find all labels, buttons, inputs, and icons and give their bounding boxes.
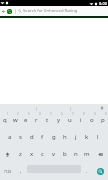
button[interactable]: d [26,129,37,146]
staticText: f [41,133,44,141]
button[interactable]: Site icon [6,6,12,16]
staticText: q [3,116,7,124]
staticText: 3 [28,112,30,116]
staticText: z [19,150,22,158]
button[interactable]: k [81,129,92,146]
staticText: k [85,133,89,141]
staticText: Search for Enhanced Rating [23,8,78,14]
staticText: n [74,150,78,158]
button[interactable]: 0 [97,112,108,129]
button[interactable]: . [82,163,92,180]
button[interactable] [36,104,70,112]
staticText: 8 [83,112,85,116]
staticText: , [20,168,22,175]
button[interactable]: f [37,129,48,146]
staticText: 0 [105,112,107,116]
button[interactable]: Search [92,163,108,180]
button[interactable]: b [59,146,70,163]
button[interactable]: 7 [64,112,75,129]
staticText: 6 [61,112,63,116]
button[interactable]: s [15,129,26,146]
button[interactable]: g [48,129,59,146]
button[interactable]: v [48,146,59,163]
staticText: 9 [94,112,96,116]
staticText: 4 [39,112,41,116]
button[interactable]: l [92,129,103,146]
button[interactable]: x [26,146,37,163]
button[interactable] [70,104,96,112]
staticText: u [68,116,72,124]
button[interactable]: 4 [31,112,42,129]
staticText: h [63,133,67,141]
staticText: e [24,116,28,124]
staticText: a [8,133,12,141]
staticText: . [86,168,88,175]
button[interactable]: , [16,163,26,180]
button[interactable]: a [4,129,15,146]
staticText: 1 [7,112,9,116]
staticText: g [52,133,56,141]
staticText: 8:00 [99,1,107,6]
staticText: p [101,116,105,124]
staticText: x [30,150,34,158]
staticText: t [46,116,49,124]
button[interactable]: n [70,146,81,163]
staticText: i [80,116,82,124]
button[interactable]: 1 [0,112,10,129]
button[interactable]: Back [0,6,6,16]
button[interactable]: c [37,146,48,163]
staticText: s [19,133,22,141]
button[interactable]: 5 [42,112,53,129]
staticText: o [90,116,94,124]
staticText: m [84,150,90,158]
button[interactable]: Backspace [92,146,108,163]
staticText: l [97,133,99,141]
staticText: j [75,133,77,141]
button[interactable]: 3 [20,112,31,129]
button[interactable]: m [81,146,92,163]
button[interactable]: h [59,129,70,146]
button[interactable]: ?123 [0,163,16,180]
staticText: r [35,116,38,124]
button[interactable]: 9 [86,112,97,129]
staticText: v [52,150,56,158]
staticText: b [63,150,67,158]
staticText: ?123 [4,169,12,174]
button[interactable]: j [70,129,81,146]
button[interactable]: 6 [53,112,64,129]
button[interactable]: Search for Enhanced Rating [18,6,78,16]
button[interactable]: 8 [75,112,86,129]
button[interactable]: Shift [0,146,15,163]
staticText: 2 [17,112,19,116]
staticText: y [57,116,61,124]
button[interactable]: Voice input [96,104,108,112]
button[interactable]: 2 [10,112,20,129]
staticText: w [13,116,18,124]
staticText: 7 [72,112,74,116]
button[interactable]: z [15,146,26,163]
staticText: c [41,150,44,158]
staticText: 5 [50,112,52,116]
staticText: d [30,133,34,141]
